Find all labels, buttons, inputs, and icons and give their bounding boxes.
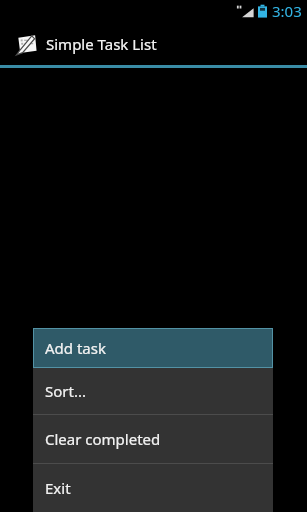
staticText: 3:03 (272, 1, 302, 21)
staticText: Clear completed (45, 429, 161, 449)
button[interactable]: Sort... (33, 368, 273, 414)
staticText: Sort... (45, 381, 86, 401)
button[interactable]: Exit (33, 464, 273, 512)
staticText: Simple Task List (46, 34, 157, 54)
staticText: Add task (45, 338, 106, 358)
button[interactable]: Clear completed (33, 415, 273, 463)
button[interactable]: Add task (33, 328, 273, 368)
other: App icon (14, 32, 38, 56)
staticText: Exit (45, 478, 71, 498)
